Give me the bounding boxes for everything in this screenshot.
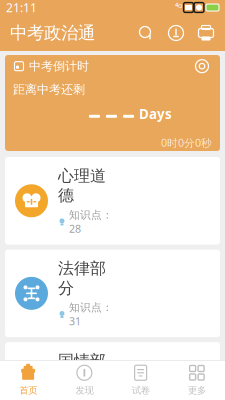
- staticText: 知识点：21: [69, 393, 113, 400]
- staticText: 心理道德: [58, 166, 106, 205]
- staticText: 首页: [19, 385, 37, 396]
- staticText: 试卷: [132, 385, 150, 396]
- staticText: 发现: [75, 385, 93, 396]
- staticText: 国情部分: [58, 351, 106, 390]
- staticText: 知识点：28: [69, 208, 113, 236]
- button[interactable]: 法律部分: [5, 250, 220, 337]
- staticText: Days: [139, 105, 172, 123]
- staticText: 法律部分: [58, 259, 106, 298]
- button[interactable]: 发现: [56, 360, 112, 400]
- staticText: 中考政治通: [10, 22, 95, 44]
- button[interactable]: 搜索: [131, 18, 161, 48]
- staticText: 距离中考还剩: [13, 82, 85, 97]
- staticText: 21:11: [6, 0, 37, 15]
- button[interactable]: 心理道德: [5, 157, 220, 245]
- button[interactable]: 国情部分: [5, 342, 220, 400]
- button[interactable]: 下载: [161, 18, 191, 48]
- staticText: ⁴ᴳ: [175, 1, 182, 14]
- button[interactable]: 首页: [0, 360, 56, 400]
- button[interactable]: 打印: [191, 18, 221, 48]
- staticText: 更多: [188, 385, 206, 396]
- button[interactable]: 试卷: [112, 360, 169, 400]
- button[interactable]: 更多: [169, 360, 225, 400]
- staticText: 0时0分0秒: [161, 136, 212, 150]
- staticText: 知识点：31: [69, 301, 113, 328]
- staticText: 中考倒计时: [29, 59, 89, 73]
- button[interactable]: 设置: [192, 56, 212, 76]
